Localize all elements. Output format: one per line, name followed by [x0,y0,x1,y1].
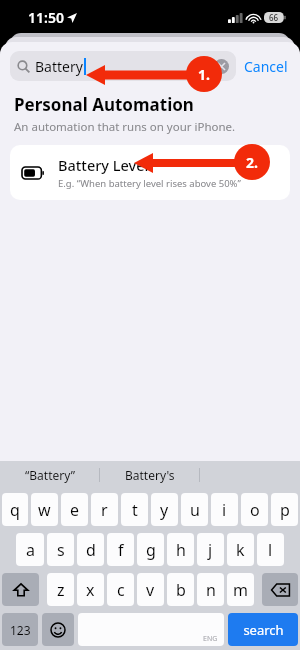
staticText: An automation that runs on your iPhone. [14,119,236,135]
button[interactable]: 123 [2,613,38,646]
button[interactable]: Battery [10,51,236,81]
staticText: j [208,539,213,561]
staticText: ENG [203,634,218,644]
button[interactable]: y [151,493,178,526]
button[interactable]: Clear text [214,59,229,74]
staticText: k [236,539,245,561]
staticText: 123 [10,622,31,638]
button[interactable]: 1. [186,56,222,92]
staticText: c [117,579,125,601]
staticText: E.g. “When battery level rises above 50%… [58,177,241,190]
staticText: 1. [198,65,210,84]
button[interactable]: Emoji [42,613,74,646]
button[interactable]: c [107,573,134,606]
button[interactable]: q [2,493,28,526]
button[interactable]: 2. [234,144,270,180]
staticText: 11:50 [28,8,64,27]
staticText: y [160,499,169,521]
button[interactable]: v [137,573,164,606]
staticText: g [146,539,156,561]
staticText: m [233,579,248,601]
staticText: w [38,499,51,521]
staticText: q [10,499,20,521]
button[interactable]: i [211,493,238,526]
button[interactable]: d [77,533,104,566]
button[interactable]: Battery Level [10,145,290,200]
button[interactable]: l [257,533,284,566]
button[interactable]: b [167,573,194,606]
staticText: Battery's [125,467,175,483]
staticText: b [176,579,186,601]
staticText: f [118,539,124,561]
button[interactable]: s [47,533,74,566]
button[interactable]: Shift [2,573,39,606]
staticText: o [250,499,260,521]
button[interactable]: a [16,533,44,566]
staticText: i [222,499,227,521]
button[interactable]: Backspace [262,573,298,606]
staticText: a [26,539,35,561]
staticText: t [132,499,138,521]
button[interactable]: h [167,533,194,566]
button[interactable]: f [107,533,134,566]
staticText: “Battery” [25,467,76,483]
staticText: l [268,539,273,561]
staticText: Battery [35,57,83,76]
staticText: d [86,539,96,561]
staticText: Battery Level [58,155,149,175]
button[interactable]: t [121,493,148,526]
staticText: n [206,579,216,601]
button[interactable]: search [228,613,298,646]
button[interactable]: Cancel [236,53,290,80]
button[interactable]: k [227,533,254,566]
button[interactable]: r [91,493,118,526]
staticText: h [176,539,186,561]
button[interactable]: o [241,493,268,526]
staticText: z [57,579,65,601]
button[interactable]: Space [78,613,224,646]
staticText: r [101,499,108,521]
button[interactable]: j [197,533,224,566]
button[interactable]: n [197,573,224,606]
button[interactable]: p [271,493,298,526]
button[interactable]: “Battery” [0,461,100,489]
staticText: s [57,539,65,561]
staticText: v [146,579,155,601]
staticText: search [243,621,284,639]
button[interactable]: u [181,493,208,526]
button[interactable]: g [137,533,164,566]
staticText: x [86,579,95,601]
button[interactable]: Battery's [100,461,200,489]
button[interactable]: e [61,493,88,526]
staticText: Personal Automation [14,93,194,116]
staticText: 2. [246,153,258,172]
staticText: e [70,499,80,521]
staticText: p [280,499,290,521]
staticText: Cancel [244,57,288,76]
button[interactable]: w [31,493,58,526]
staticText: 66 [269,12,279,23]
button[interactable]: z [47,573,74,606]
button[interactable]: m [227,573,254,606]
staticText: u [190,499,200,521]
button[interactable]: x [77,573,104,606]
